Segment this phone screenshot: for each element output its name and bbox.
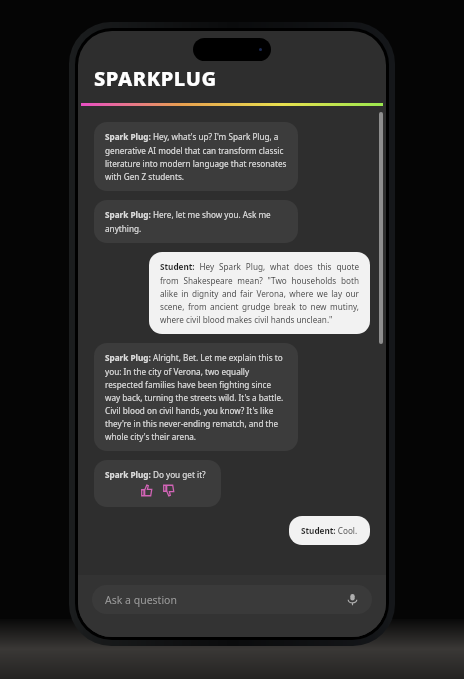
- staticText: SPARKPLUG: [94, 65, 217, 92]
- button[interactable]: Thumbs down: [161, 483, 176, 498]
- button[interactable]: Voice input: [346, 593, 359, 606]
- button[interactable]: Ask a question: [92, 585, 372, 614]
- button[interactable]: Spark Plug: Alright, Bet. Let me explain…: [94, 343, 298, 451]
- button[interactable]: Spark Plug: Here, let me show you. Ask m…: [94, 200, 298, 243]
- staticText: Spark Plug: Hey, what's up? I'm Spark Pl…: [105, 131, 287, 182]
- staticText: Student: Cool.: [301, 525, 358, 536]
- staticText: Spark Plug: Alright, Bet. Let me explain…: [105, 352, 287, 442]
- button[interactable]: Student: Hey Spark Plug, what does this …: [149, 252, 370, 334]
- staticText: Spark Plug: Do you get it?: [105, 469, 206, 480]
- staticText: Ask a question: [105, 593, 346, 607]
- staticText: Spark Plug: Here, let me show you. Ask m…: [105, 209, 287, 234]
- staticText: Student: Hey Spark Plug, what does this …: [160, 261, 359, 325]
- button[interactable]: Spark Plug: Hey, what's up? I'm Spark Pl…: [94, 122, 298, 191]
- button[interactable]: Thumbs up: [139, 483, 154, 498]
- button[interactable]: Student: Cool.: [289, 516, 370, 545]
- button[interactable]: Spark Plug: Do you get it?: [94, 460, 221, 507]
